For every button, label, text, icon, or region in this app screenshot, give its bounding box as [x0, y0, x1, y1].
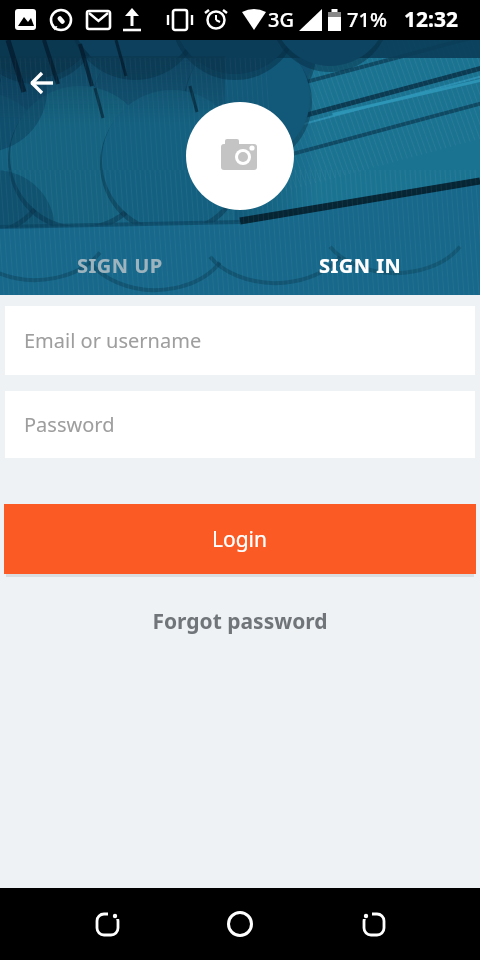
staticText: SIGN UP: [77, 252, 163, 279]
staticText: 3G: [268, 6, 294, 33]
button[interactable]: [24, 65, 60, 101]
button[interactable]: Forgot password: [0, 607, 480, 636]
staticText: Login: [212, 525, 268, 554]
button[interactable]: [186, 102, 294, 210]
button[interactable]: SIGN UP: [0, 235, 240, 295]
button[interactable]: [0, 888, 160, 960]
staticText: Email or username: [24, 327, 202, 354]
button[interactable]: [160, 888, 320, 960]
staticText: SIGN IN: [319, 252, 402, 279]
staticText: 12:32: [404, 5, 458, 34]
button[interactable]: Password: [5, 391, 475, 458]
button[interactable]: Login: [4, 504, 476, 574]
button[interactable]: SIGN IN: [240, 235, 480, 295]
button[interactable]: [320, 888, 480, 960]
staticText: 71%: [347, 6, 387, 33]
staticText: Password: [24, 411, 115, 438]
button[interactable]: Email or username: [5, 306, 475, 375]
